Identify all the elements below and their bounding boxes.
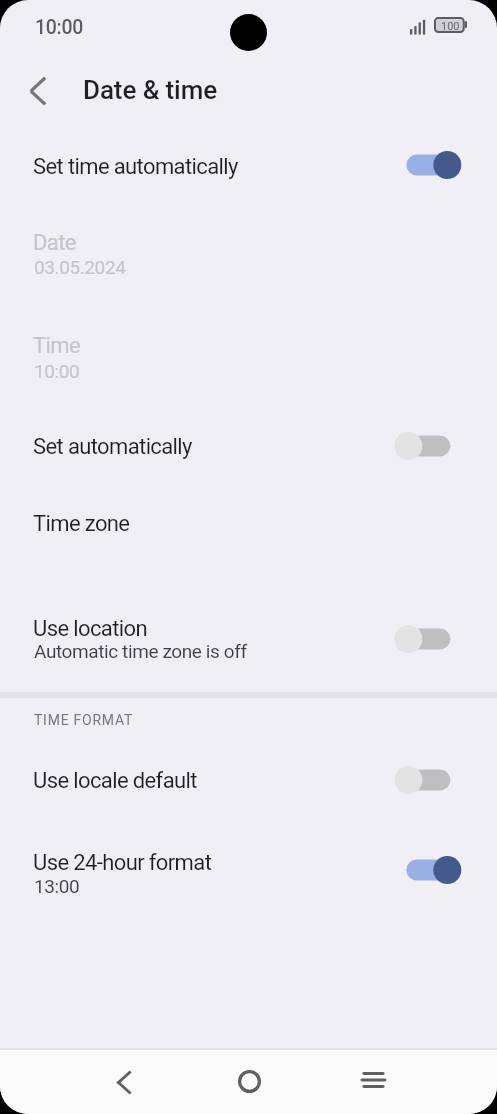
staticText: Set automatically — [33, 434, 192, 460]
button[interactable]: Recent apps — [343, 1050, 403, 1110]
button[interactable]: Back — [16, 68, 62, 114]
staticText: Use locale default — [33, 768, 197, 794]
button[interactable]: Date — [0, 216, 497, 292]
staticText: Use location — [33, 616, 147, 642]
staticText: 10:00 — [35, 16, 84, 39]
button[interactable]: Set time automatically — [0, 140, 497, 196]
staticText: Date — [33, 230, 76, 256]
staticText: Set time automatically — [33, 154, 238, 180]
staticText: Automatic time zone is off — [34, 640, 247, 662]
staticText: Time zone — [33, 511, 130, 537]
staticText: Time — [33, 333, 80, 359]
button[interactable]: Home — [219, 1051, 279, 1111]
button[interactable]: Time zone — [0, 497, 497, 553]
button[interactable]: Back — [94, 1052, 154, 1112]
button[interactable]: Use locale default — [0, 754, 497, 810]
staticText: 100 — [441, 20, 460, 33]
button[interactable]: Use location — [0, 602, 497, 676]
staticText: 10:00 — [34, 360, 80, 382]
button[interactable]: Use 24-hour format — [0, 836, 497, 911]
staticText: TIME FORMAT — [34, 712, 134, 728]
button[interactable]: Set automatically — [0, 420, 497, 476]
staticText: 13:00 — [34, 875, 80, 897]
button[interactable]: Time — [0, 319, 497, 396]
staticText: Date & time — [83, 75, 218, 105]
staticText: Use 24-hour format — [33, 850, 212, 876]
staticText: 03.05.2024 — [34, 256, 126, 278]
